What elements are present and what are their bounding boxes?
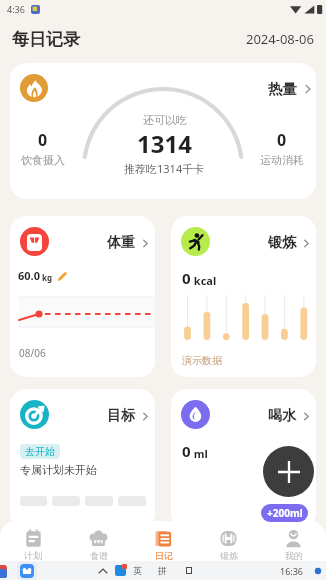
staticText: 还可以吃 (143, 113, 187, 127)
staticText: 锻炼 (220, 550, 238, 561)
button[interactable]: 喝水 (171, 389, 316, 529)
staticText: 喝水 (268, 407, 296, 425)
staticText: 去开始 (25, 445, 55, 458)
button[interactable]: 我的 (261, 521, 326, 562)
staticText: 演示数据 (182, 354, 222, 367)
staticText: 日记 (155, 550, 173, 561)
staticText: 热量 (268, 80, 297, 98)
button[interactable]: Add water (263, 446, 314, 497)
staticText: 目标 (107, 407, 135, 425)
staticText: 锻炼 (268, 234, 296, 252)
button[interactable]: 食谱 (66, 521, 131, 562)
staticText: 推荐吃1314千卡 (124, 161, 205, 176)
staticText: 体重 (107, 234, 135, 252)
staticText: kg (40, 272, 53, 283)
staticText: +200ml (267, 506, 303, 520)
button[interactable]: +200ml (261, 504, 308, 522)
staticText: 饮食摄入 (21, 153, 65, 167)
staticText: 专属计划未开始 (20, 463, 97, 477)
button[interactable]: 计划 (0, 521, 66, 562)
button[interactable]: 体重 (10, 216, 155, 377)
staticText: 0 (277, 129, 287, 151)
staticText: 运动消耗 (260, 153, 304, 167)
staticText: 我的 (285, 550, 303, 561)
staticText: 1314 (137, 127, 192, 160)
staticText: ml (191, 446, 208, 461)
staticText: 0 (182, 268, 191, 288)
staticText: 拼 (158, 565, 167, 576)
button[interactable]: 日记 (131, 521, 196, 562)
button[interactable]: 锻炼 (171, 216, 316, 377)
staticText: 60.0 (18, 268, 40, 283)
staticText: 每日记录 (12, 29, 80, 50)
staticText: 08/06 (19, 346, 46, 360)
staticText: kcal (191, 273, 217, 288)
staticText: 0 (38, 129, 48, 151)
staticText: 英 (133, 565, 142, 576)
staticText: 4:36 (7, 3, 25, 15)
button[interactable]: 热量 (10, 63, 316, 199)
button[interactable]: 锻炼 (196, 521, 261, 562)
staticText: 0 (182, 441, 191, 461)
button[interactable]: 2024-08-06 (246, 30, 314, 48)
staticText: 计划 (24, 550, 42, 561)
staticText: 食谱 (90, 550, 108, 561)
button[interactable]: 目标 (10, 389, 155, 529)
staticText: 16:36 (280, 565, 304, 577)
